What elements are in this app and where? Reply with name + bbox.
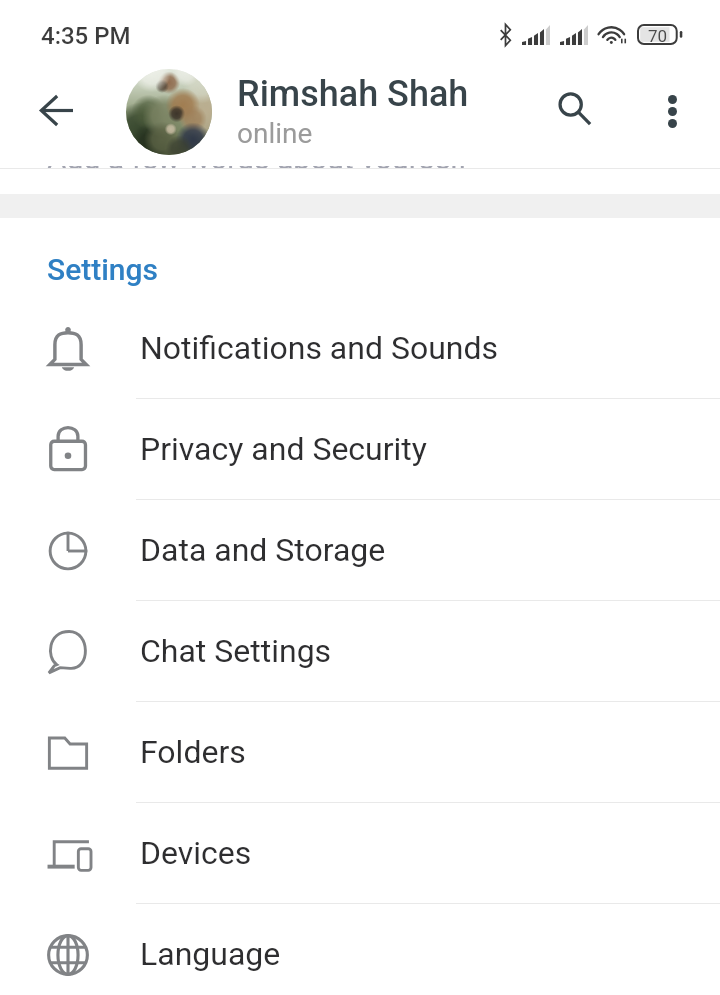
staticText: Data and Storage	[140, 531, 386, 569]
staticText: Rimshah Shah	[237, 73, 469, 115]
button[interactable]: Language	[0, 904, 720, 995]
button[interactable]: Data and Storage	[0, 500, 720, 601]
button[interactable]: Devices	[0, 803, 720, 904]
staticText: Privacy and Security	[140, 430, 427, 468]
staticText: 4:35 PM	[41, 22, 131, 50]
staticText: online	[237, 117, 313, 150]
staticText: Chat Settings	[140, 632, 332, 670]
button[interactable]: Back	[22, 76, 90, 144]
staticText: 70	[648, 26, 668, 46]
button[interactable]: Settings	[47, 252, 159, 287]
staticText: Folders	[140, 733, 246, 771]
button[interactable]: Search	[540, 74, 610, 144]
staticText: Language	[140, 935, 281, 973]
button[interactable]: Add a few words about yourself	[0, 166, 720, 194]
button[interactable]: Privacy and Security	[0, 399, 720, 500]
button[interactable]: Notifications and Sounds	[0, 298, 720, 399]
staticText: Add a few words about yourself	[47, 166, 468, 168]
staticText: Notifications and Sounds	[140, 329, 499, 367]
staticText: Devices	[140, 834, 252, 872]
button[interactable]: More options	[637, 76, 707, 146]
button[interactable]: Chat Settings	[0, 601, 720, 702]
button[interactable]: Folders	[0, 702, 720, 803]
